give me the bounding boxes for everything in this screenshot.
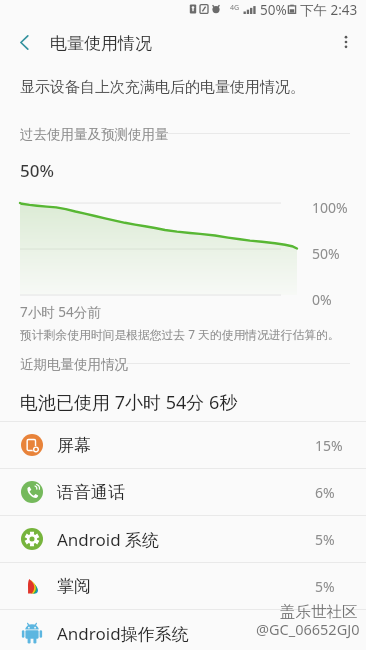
staticText: 屏幕 [57, 435, 91, 456]
staticText: 近期电量使用情况 [20, 356, 128, 373]
staticText: 50% [260, 1, 287, 19]
button[interactable]: 掌阅 [0, 563, 366, 609]
button[interactable]: Android 系统 [0, 516, 366, 562]
staticText: 过去使用量及预测使用量 [20, 126, 169, 143]
staticText: 7小时 54分前 [20, 303, 101, 321]
staticText: 100% [312, 198, 348, 217]
staticText: 掌阅 [57, 576, 91, 597]
staticText: 5% [315, 530, 335, 549]
staticText: 6% [315, 483, 335, 502]
staticText: Android 系统 [57, 528, 160, 551]
staticText: 0% [312, 290, 332, 309]
staticText: 显示设备自上次充满电后的电量使用情况。 [20, 78, 305, 97]
button[interactable]: Back [0, 22, 48, 62]
staticText: 盖乐世社区 [280, 602, 358, 622]
button[interactable]: 屏幕 [0, 422, 366, 468]
staticText: @GC_06652GJ0 [256, 619, 360, 639]
staticText: 5% [315, 577, 335, 596]
staticText: 4G [230, 3, 240, 13]
staticText: 电量使用情况 [50, 33, 152, 54]
staticText: Android操作系统 [57, 622, 189, 645]
staticText: 50% [20, 159, 54, 182]
button[interactable]: Android操作系统 [0, 610, 366, 650]
staticText: 下午 2:43 [300, 1, 358, 19]
staticText: 预计剩余使用时间是根据您过去 7 天的使用情况进行估算的。 [20, 326, 340, 342]
button[interactable]: More options [326, 22, 366, 62]
staticText: 电池已使用 7小时 54分 6秒 [20, 390, 238, 415]
button[interactable]: 语音通话 [0, 469, 366, 515]
staticText: 语音通话 [57, 482, 125, 503]
staticText: 15% [315, 436, 343, 455]
staticText: 50% [312, 244, 340, 263]
